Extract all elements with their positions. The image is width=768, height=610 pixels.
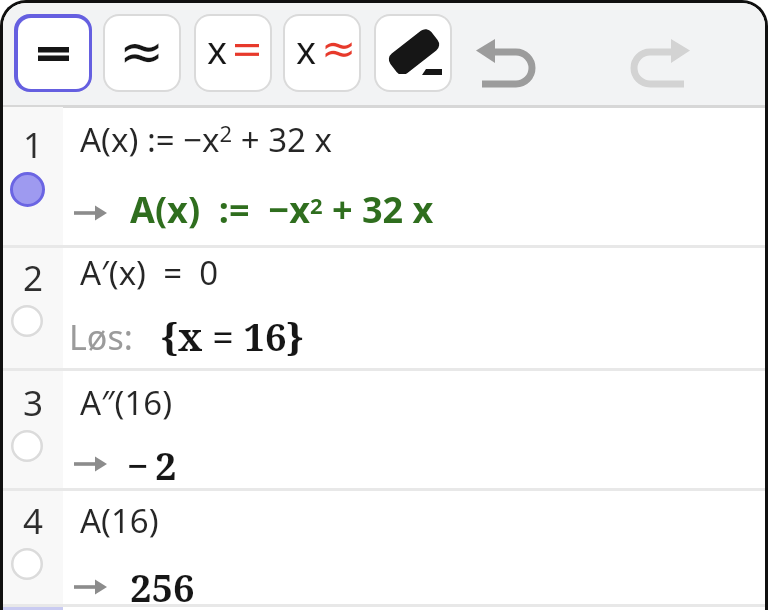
staticText: ≈ xyxy=(119,20,165,83)
staticText: 3 xyxy=(23,379,44,427)
staticText: x xyxy=(207,23,228,75)
button[interactable]: x xyxy=(194,14,272,92)
button[interactable] xyxy=(374,14,452,92)
button[interactable]: ≈ xyxy=(103,14,181,92)
button[interactable]: x xyxy=(283,14,361,92)
staticText: ≈ xyxy=(321,24,357,73)
staticText: A(x) := −x2 + 32 x xyxy=(80,117,332,162)
staticText: A(x) := −x2 + 32 x xyxy=(130,185,434,234)
staticText: Løs: xyxy=(69,314,133,360)
staticText: 2 xyxy=(23,254,44,302)
staticText: 4 xyxy=(23,497,44,545)
staticText: A″(16) xyxy=(80,380,173,425)
staticText: 1 xyxy=(23,121,44,169)
staticText: A(16) xyxy=(80,498,159,543)
staticText: − 2 xyxy=(127,439,177,491)
button[interactable] xyxy=(14,14,92,92)
staticText: 256 xyxy=(130,561,195,610)
staticText: {x = 16} xyxy=(161,310,304,362)
button[interactable] xyxy=(623,28,701,98)
staticText: x xyxy=(296,23,317,75)
button[interactable]: 2 xyxy=(3,248,765,371)
button[interactable]: 4 xyxy=(3,491,765,605)
button[interactable]: 3 xyxy=(3,371,765,489)
staticText: A′(x) = 0 xyxy=(80,250,219,295)
button[interactable]: 1 xyxy=(3,107,765,245)
button[interactable] xyxy=(465,28,543,98)
